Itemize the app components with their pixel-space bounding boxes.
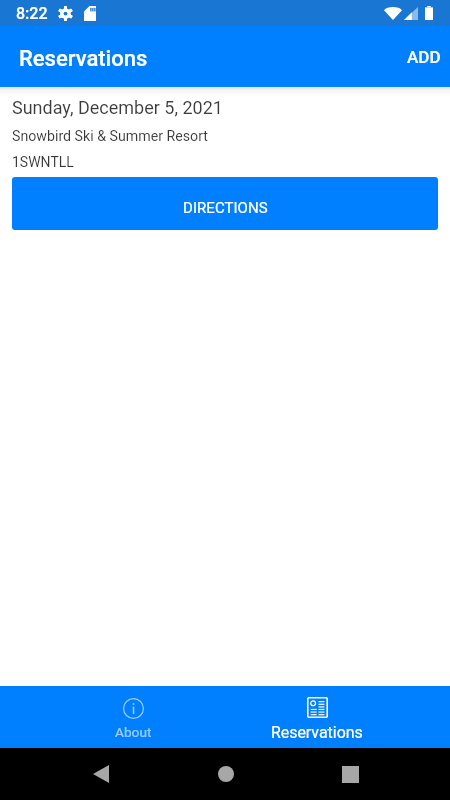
button[interactable]: ADD xyxy=(395,34,450,80)
staticText: 8:22 xyxy=(16,4,48,23)
button[interactable]: Reservations xyxy=(225,686,409,748)
staticText: Reservations xyxy=(19,46,148,72)
staticText: Reservations xyxy=(271,723,363,742)
button[interactable]: DIRECTIONS xyxy=(12,177,438,230)
staticText: About xyxy=(115,724,152,740)
button[interactable]: Home xyxy=(163,748,288,800)
button[interactable]: About xyxy=(41,686,225,748)
staticText: Snowbird Ski & Summer Resort xyxy=(12,128,209,145)
staticText: 1SWNTLL xyxy=(12,154,74,170)
staticText: DIRECTIONS xyxy=(183,199,268,217)
staticText: ADD xyxy=(407,47,441,67)
staticText: Sunday, December 5, 2021 xyxy=(12,97,223,118)
button[interactable]: Back xyxy=(38,748,163,800)
button[interactable]: Recent apps xyxy=(288,748,413,800)
